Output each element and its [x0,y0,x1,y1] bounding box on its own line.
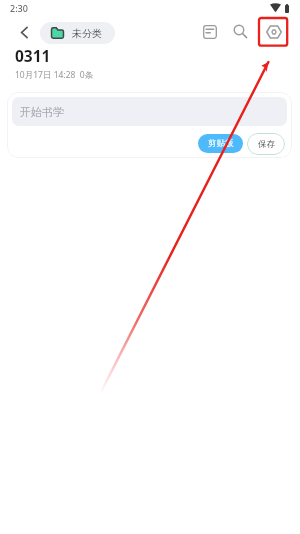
staticText: 10月17日 14:28 0条 [15,69,94,81]
staticText: 2:30 [10,2,28,14]
staticText: 开始书学 [20,105,64,119]
button[interactable]: 剪贴板 [198,134,243,153]
button[interactable]: Settings [262,20,285,43]
button[interactable]: Back [14,22,34,42]
button[interactable]: 开始书学 [12,97,287,126]
staticText: 保存 [258,139,275,150]
button[interactable]: Search [229,20,252,43]
button[interactable]: Note list [198,20,221,43]
staticText: 0311 [15,45,51,66]
button[interactable]: 保存 [247,133,285,155]
staticText: 剪贴板 [208,138,234,149]
staticText: 未分类 [72,27,102,40]
button[interactable]: 未分类 [40,22,115,44]
